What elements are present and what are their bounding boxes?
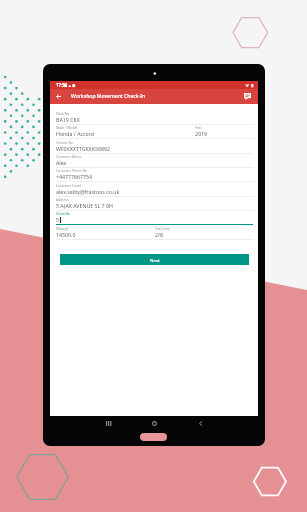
staticText: Workshop Movement Check-In [71, 93, 146, 100]
staticText: +44777667754 [56, 173, 93, 180]
staticText: Mileage [56, 226, 69, 230]
button[interactable]: Address [56, 197, 253, 211]
staticText: 5 AJAX AVENUE SL 7 0H [56, 202, 113, 209]
staticText: Year [195, 125, 202, 129]
staticText: 2019 [195, 130, 208, 137]
staticText: Make / Model [56, 125, 78, 129]
button[interactable]: Make / Model [56, 125, 192, 139]
staticText: WF0XXXTTGXXK56892 [56, 145, 110, 152]
staticText: Customer Phone No [56, 168, 88, 172]
button[interactable]: Back [50, 89, 67, 104]
staticText: Next [150, 257, 160, 263]
staticText: Claim No [56, 211, 71, 215]
button[interactable]: Next [60, 254, 249, 265]
staticText: Customer Email [56, 183, 81, 187]
button[interactable]: Customer Email [56, 183, 253, 197]
button[interactable]: Customer Name [56, 154, 253, 168]
staticText: Plate No [56, 111, 70, 115]
staticText: Alex [56, 159, 67, 166]
staticText: Customer Name [56, 154, 82, 158]
staticText: Fuel Level [155, 226, 171, 230]
staticText: 5 [56, 216, 60, 223]
staticText: BA19 CKX [56, 116, 80, 123]
button[interactable]: Plate No [56, 111, 253, 125]
staticText: alex.selby@frastous.co.uk [56, 188, 120, 195]
button[interactable]: Customer Phone No [56, 168, 253, 182]
button[interactable]: Claim No [56, 211, 253, 225]
button[interactable]: Year [195, 125, 253, 139]
staticText: 17:58 [56, 82, 68, 88]
staticText: Honda / Accord [56, 130, 95, 137]
staticText: Chassis No [56, 140, 73, 144]
staticText: Address [56, 197, 69, 201]
button[interactable]: Back [193, 416, 207, 430]
button[interactable]: Messages [240, 89, 255, 104]
button[interactable]: Fuel Level [155, 226, 253, 240]
button[interactable]: Recent apps [101, 416, 115, 430]
staticText: 2/8 [155, 231, 163, 238]
button[interactable]: Chassis No [56, 140, 253, 154]
button[interactable]: Home [147, 416, 161, 430]
staticText: 14500.0 [56, 231, 76, 238]
button[interactable]: Mileage [56, 226, 153, 240]
